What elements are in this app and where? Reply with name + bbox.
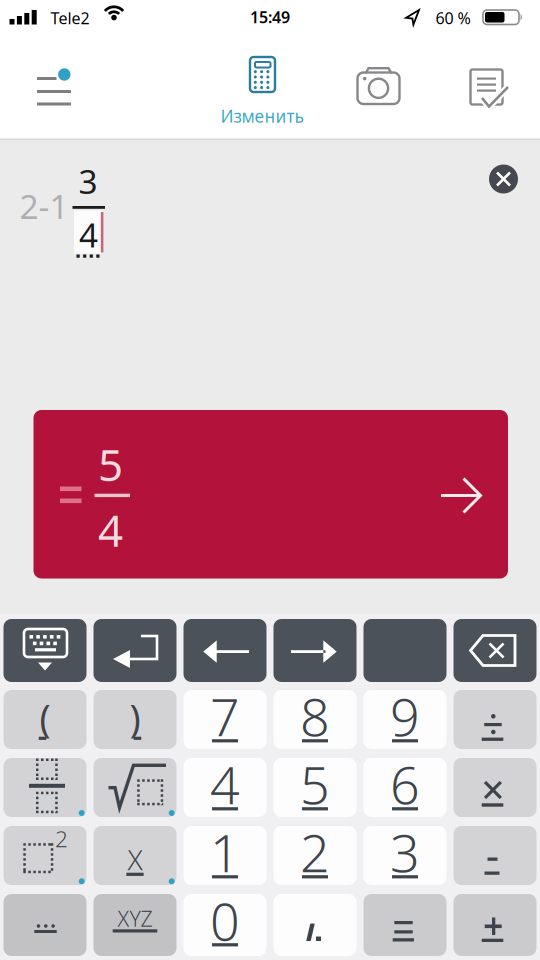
staticText: 60 % [435,7,470,29]
button[interactable]: Изменить [228,54,312,132]
staticText: 0 [210,886,240,955]
button[interactable]: 8 [273,690,356,749]
button[interactable]: 6 [363,758,446,817]
staticText: 3 [390,817,420,887]
button[interactable]: Влево [183,619,266,682]
button[interactable]: XYZ [93,894,176,956]
staticText: 7 [210,681,240,751]
button[interactable]: Камера [351,64,407,112]
staticText: 3 [78,159,97,203]
button[interactable]: Показать решение [33,410,508,578]
staticText: 4 [210,749,240,819]
staticText: XYZ [117,904,152,933]
staticText: 2 [300,817,330,887]
button[interactable]: 4 [183,758,266,817]
staticText: Tele2 [50,7,89,29]
button[interactable]: 7 [183,690,266,749]
button[interactable]: Скрыть клавиатуру [3,619,86,682]
button[interactable]: Умножить [453,758,536,817]
button[interactable]: Ввод [93,619,176,682]
button[interactable]: Удалить [453,619,536,682]
staticText: 5 [300,749,330,819]
staticText: Изменить [220,104,303,127]
button[interactable]: 1 [183,826,266,885]
button[interactable]: ) [93,690,176,749]
button[interactable]: Дробь [3,758,86,817]
button[interactable]: ( [3,690,86,749]
staticText: ( [39,693,50,742]
button[interactable]: Пробел [363,619,446,682]
staticText: X [127,841,142,878]
button[interactable]: Плюс-минус [453,894,536,956]
button[interactable]: Закрыть [489,164,518,193]
button[interactable]: 3 [363,826,446,885]
staticText: 8 [300,681,330,751]
staticText: 4 [98,501,123,559]
button[interactable]: Вправо [273,619,356,682]
button[interactable]: Равно [363,894,446,956]
button[interactable]: , [273,894,356,956]
button[interactable]: 5 [273,758,356,817]
button[interactable]: Корень [93,758,176,817]
button[interactable]: Квадрат [3,826,86,885]
staticText: 4 [79,212,98,257]
staticText: ) [129,693,140,742]
button[interactable]: Минус [453,826,536,885]
button[interactable]: 2 [273,826,356,885]
staticText: 9 [390,681,420,751]
staticText: 15:49 [250,6,290,28]
staticText: 2 [55,823,68,853]
button[interactable]: Разделить [453,690,536,749]
staticText: 1 [210,817,240,887]
button[interactable]: Ещё [3,894,86,956]
button[interactable]: x [93,826,176,885]
button[interactable]: 9 [363,690,446,749]
button[interactable]: 0 [183,894,266,956]
button[interactable]: Меню [30,66,78,110]
button[interactable]: Заметки [464,66,512,114]
staticText: 2-1 [19,184,68,228]
staticText: 5 [98,435,123,493]
staticText: 6 [390,749,420,819]
